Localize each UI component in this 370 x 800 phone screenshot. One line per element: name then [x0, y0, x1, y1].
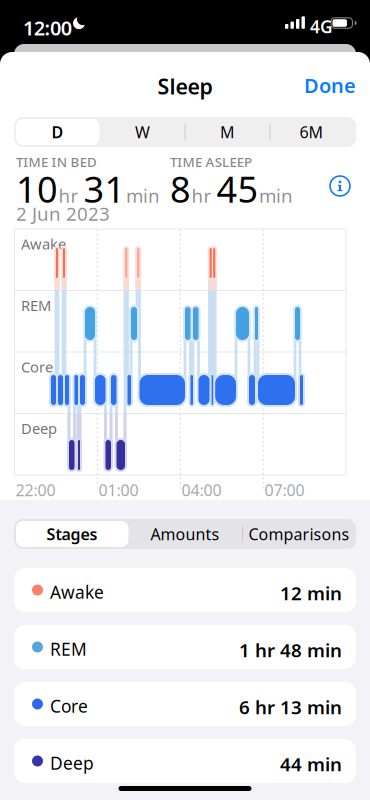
button[interactable]: About Sleep [329, 175, 351, 197]
staticText: M [220, 121, 235, 143]
staticText: 8 [170, 165, 191, 213]
staticText: Amounts [150, 523, 219, 545]
staticText: min [259, 183, 293, 208]
staticText: REM [50, 637, 87, 660]
staticText: hr [191, 183, 211, 208]
staticText: 44 min [280, 751, 342, 776]
staticText: 6 hr 13 min [239, 694, 342, 719]
staticText: Awake [21, 234, 66, 253]
staticText: Core [21, 357, 53, 376]
staticText: Comparisons [248, 523, 349, 545]
staticText: Deep [21, 418, 57, 438]
staticText: 12 min [280, 580, 342, 605]
staticText: Awake [50, 580, 104, 603]
staticText: min [126, 183, 160, 208]
staticText: 6M [299, 121, 323, 143]
staticText: hr [58, 183, 78, 208]
staticText: 04:00 [181, 479, 221, 501]
button[interactable]: Stages [15, 519, 129, 549]
staticText: 2 Jun 2023 [16, 201, 110, 226]
staticText: TIME IN BED [16, 153, 97, 171]
staticText: Core [50, 694, 88, 717]
staticText: 45 [216, 165, 258, 213]
staticText: Sleep [157, 72, 212, 100]
button[interactable]: D [15, 117, 100, 147]
button[interactable]: 6M [269, 117, 354, 147]
staticText: 31 [83, 165, 125, 213]
button[interactable]: Done [304, 72, 356, 99]
staticText: Done [304, 72, 356, 99]
staticText: D [51, 121, 63, 143]
staticText: TIME ASLEEP [170, 153, 252, 171]
button[interactable]: W [100, 117, 185, 147]
staticText: 10 [16, 165, 58, 213]
staticText: 07:00 [264, 479, 304, 501]
staticText: REM [21, 295, 51, 315]
staticText: 4G [310, 15, 333, 38]
staticText: 22:00 [15, 479, 55, 501]
staticText: Deep [50, 751, 94, 774]
staticText: W [135, 121, 150, 143]
staticText: 01:00 [98, 479, 138, 501]
button[interactable]: Comparisons [242, 519, 356, 549]
button[interactable]: M [185, 117, 270, 147]
staticText: Stages [46, 523, 97, 545]
button[interactable]: Amounts [128, 519, 242, 549]
staticText: 12:00 [23, 14, 72, 41]
staticText: 1 hr 48 min [239, 637, 342, 662]
